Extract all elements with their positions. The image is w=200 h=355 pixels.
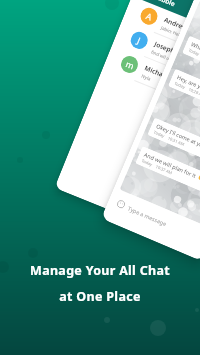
button[interactable]: And we will plan for it [135,146,200,199]
button[interactable]: J [113,20,183,68]
button[interactable]: m [103,44,174,92]
staticText: Today 10:37 AM [141,158,173,175]
staticText: Jabin: Hello [160,24,185,39]
staticText: m [124,58,136,72]
staticText: Type a message [127,205,168,227]
button[interactable]: A [122,0,193,44]
staticText: Michael D [143,63,170,81]
staticText: Manage Your All Chat [30,262,170,279]
other: Emoji [116,199,126,209]
staticText: Joseph M [153,39,180,57]
staticText: Hey, are you free today [176,73,200,103]
staticText: What she told you ? [190,40,200,67]
staticText: Andrew W [163,15,189,33]
staticText: find wil ul.. [150,48,174,63]
staticText: Nyla [141,73,152,82]
button[interactable]: Okey I'll come at yours [147,117,200,171]
staticText: Today 10:31 AM [153,129,185,147]
button[interactable]: Emoji [110,192,200,248]
staticText: Okey I'll come at yours [155,122,200,152]
staticText: J [135,35,143,47]
button[interactable]: Hey, are you free today [168,69,200,122]
staticText: A [144,10,154,24]
staticText: Today 10:25 AM [188,48,200,65]
staticText: And we will plan for it [143,151,197,179]
staticText: Chatbubble [139,0,177,8]
staticText: Today 10:28 AM [174,81,200,98]
staticText: at One Place [59,288,141,305]
button[interactable]: What she told you ? [182,35,200,89]
